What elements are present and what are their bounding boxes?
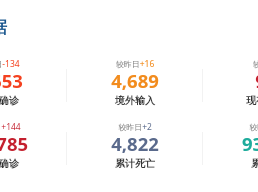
staticText: 累计死亡	[67, 157, 203, 170]
staticText: 现有无症状	[203, 94, 258, 107]
staticText: 4,653	[0, 68, 67, 93]
button[interactable]: 较昨日+144	[0, 122, 67, 170]
button[interactable]: 较昨日-21	[203, 59, 258, 107]
staticText: 全国疫情数据	[0, 17, 7, 38]
staticText: 较昨日+2	[67, 121, 203, 133]
staticText: 累计确诊	[0, 157, 67, 170]
staticText: 93,854	[203, 131, 258, 156]
staticText: 986	[203, 68, 258, 93]
staticText: 4,822	[67, 131, 203, 156]
staticText: 较昨日+144	[0, 121, 67, 133]
staticText: 较昨日-134	[0, 58, 67, 70]
button[interactable]: 较昨日+2	[67, 122, 203, 170]
button[interactable]: 较昨日+142	[203, 122, 258, 170]
staticText: 较昨日-21	[203, 58, 258, 70]
button[interactable]: 全国疫情数据	[0, 17, 7, 38]
staticText: 境外输入	[67, 94, 203, 107]
staticText: 较昨日+16	[67, 58, 203, 70]
button[interactable]: 较昨日+16	[67, 59, 203, 107]
staticText: 99,785	[0, 131, 67, 156]
staticText: 现有确诊	[0, 94, 67, 107]
staticText: 4,689	[67, 68, 203, 93]
staticText: 累计治愈	[203, 157, 258, 170]
button[interactable]: 较昨日-134	[0, 59, 67, 107]
staticText: 较昨日+142	[203, 121, 258, 133]
